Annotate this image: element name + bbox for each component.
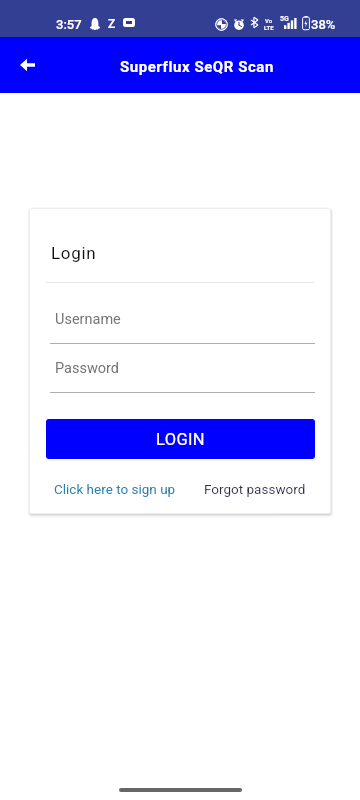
staticText: Login bbox=[51, 243, 97, 263]
staticText: LOGIN bbox=[156, 430, 205, 449]
staticText: Forgot password bbox=[204, 481, 306, 497]
staticText: 3:57 bbox=[56, 17, 82, 32]
button[interactable]: Password bbox=[50, 356, 315, 393]
button[interactable]: LOGIN bbox=[46, 419, 315, 459]
staticText: 5G bbox=[280, 15, 289, 23]
staticText: Vo bbox=[265, 17, 273, 24]
button[interactable]: Back bbox=[3, 41, 51, 89]
staticText: Password bbox=[55, 360, 120, 377]
staticText: Click here to sign up bbox=[54, 481, 176, 497]
button[interactable]: Forgot password bbox=[198, 477, 312, 501]
button[interactable]: Click here to sign up bbox=[48, 477, 182, 501]
staticText: 38% bbox=[311, 17, 336, 32]
staticText: LTE bbox=[264, 24, 274, 31]
staticText: Username bbox=[55, 311, 121, 328]
button[interactable]: Username bbox=[50, 307, 315, 344]
staticText: Superflux SeQR Scan bbox=[120, 58, 274, 76]
staticText: Z bbox=[108, 17, 116, 31]
